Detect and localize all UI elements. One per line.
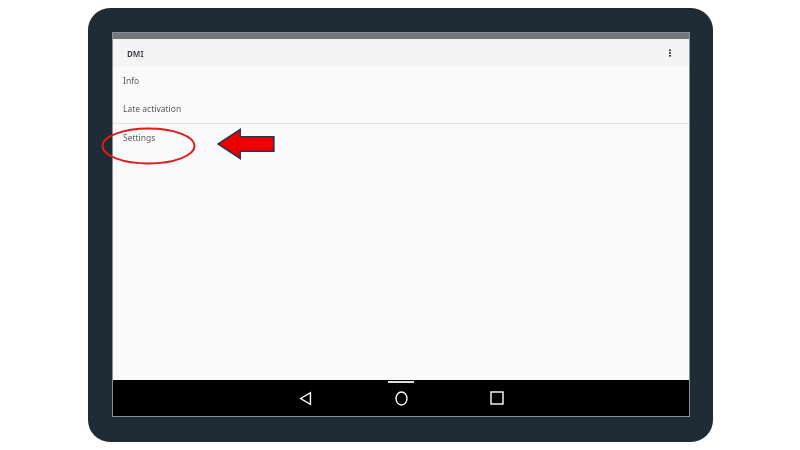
staticText: Late activation: [123, 103, 182, 115]
staticText: Settings: [123, 132, 156, 144]
button[interactable]: Settings: [113, 124, 689, 152]
staticText: DMI: [127, 48, 144, 59]
button[interactable]: Late activation: [113, 95, 689, 123]
button[interactable]: More options: [657, 40, 683, 66]
button[interactable]: Home: [379, 380, 423, 416]
staticText: Info: [123, 75, 140, 87]
button[interactable]: Recent apps: [475, 380, 519, 416]
button[interactable]: Info: [113, 67, 689, 95]
button[interactable]: Back: [283, 380, 327, 416]
